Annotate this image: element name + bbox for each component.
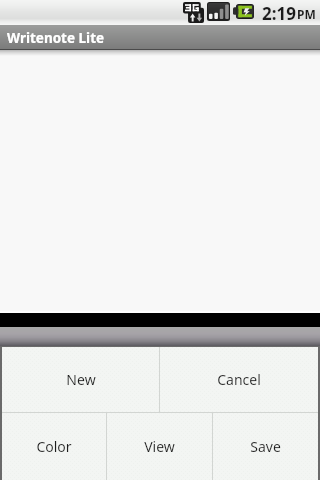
staticText: View bbox=[144, 437, 175, 456]
staticText: PM bbox=[297, 6, 316, 22]
other: 3G mobile data active bbox=[183, 2, 204, 23]
staticText: Writenote Lite bbox=[7, 29, 105, 47]
staticText: 2:19 bbox=[262, 2, 296, 25]
button[interactable]: Color bbox=[2, 413, 106, 480]
button[interactable]: Cancel bbox=[160, 347, 318, 412]
staticText: Save bbox=[250, 437, 281, 456]
other: Battery charging bbox=[233, 4, 254, 19]
staticText: Color bbox=[36, 437, 72, 456]
other: Mobile signal strength bbox=[207, 2, 230, 21]
staticText: Cancel bbox=[217, 370, 261, 389]
staticText: New bbox=[66, 370, 96, 389]
button[interactable]: New bbox=[2, 347, 159, 412]
button[interactable]: View bbox=[107, 413, 212, 480]
button[interactable]: Save bbox=[213, 413, 318, 480]
